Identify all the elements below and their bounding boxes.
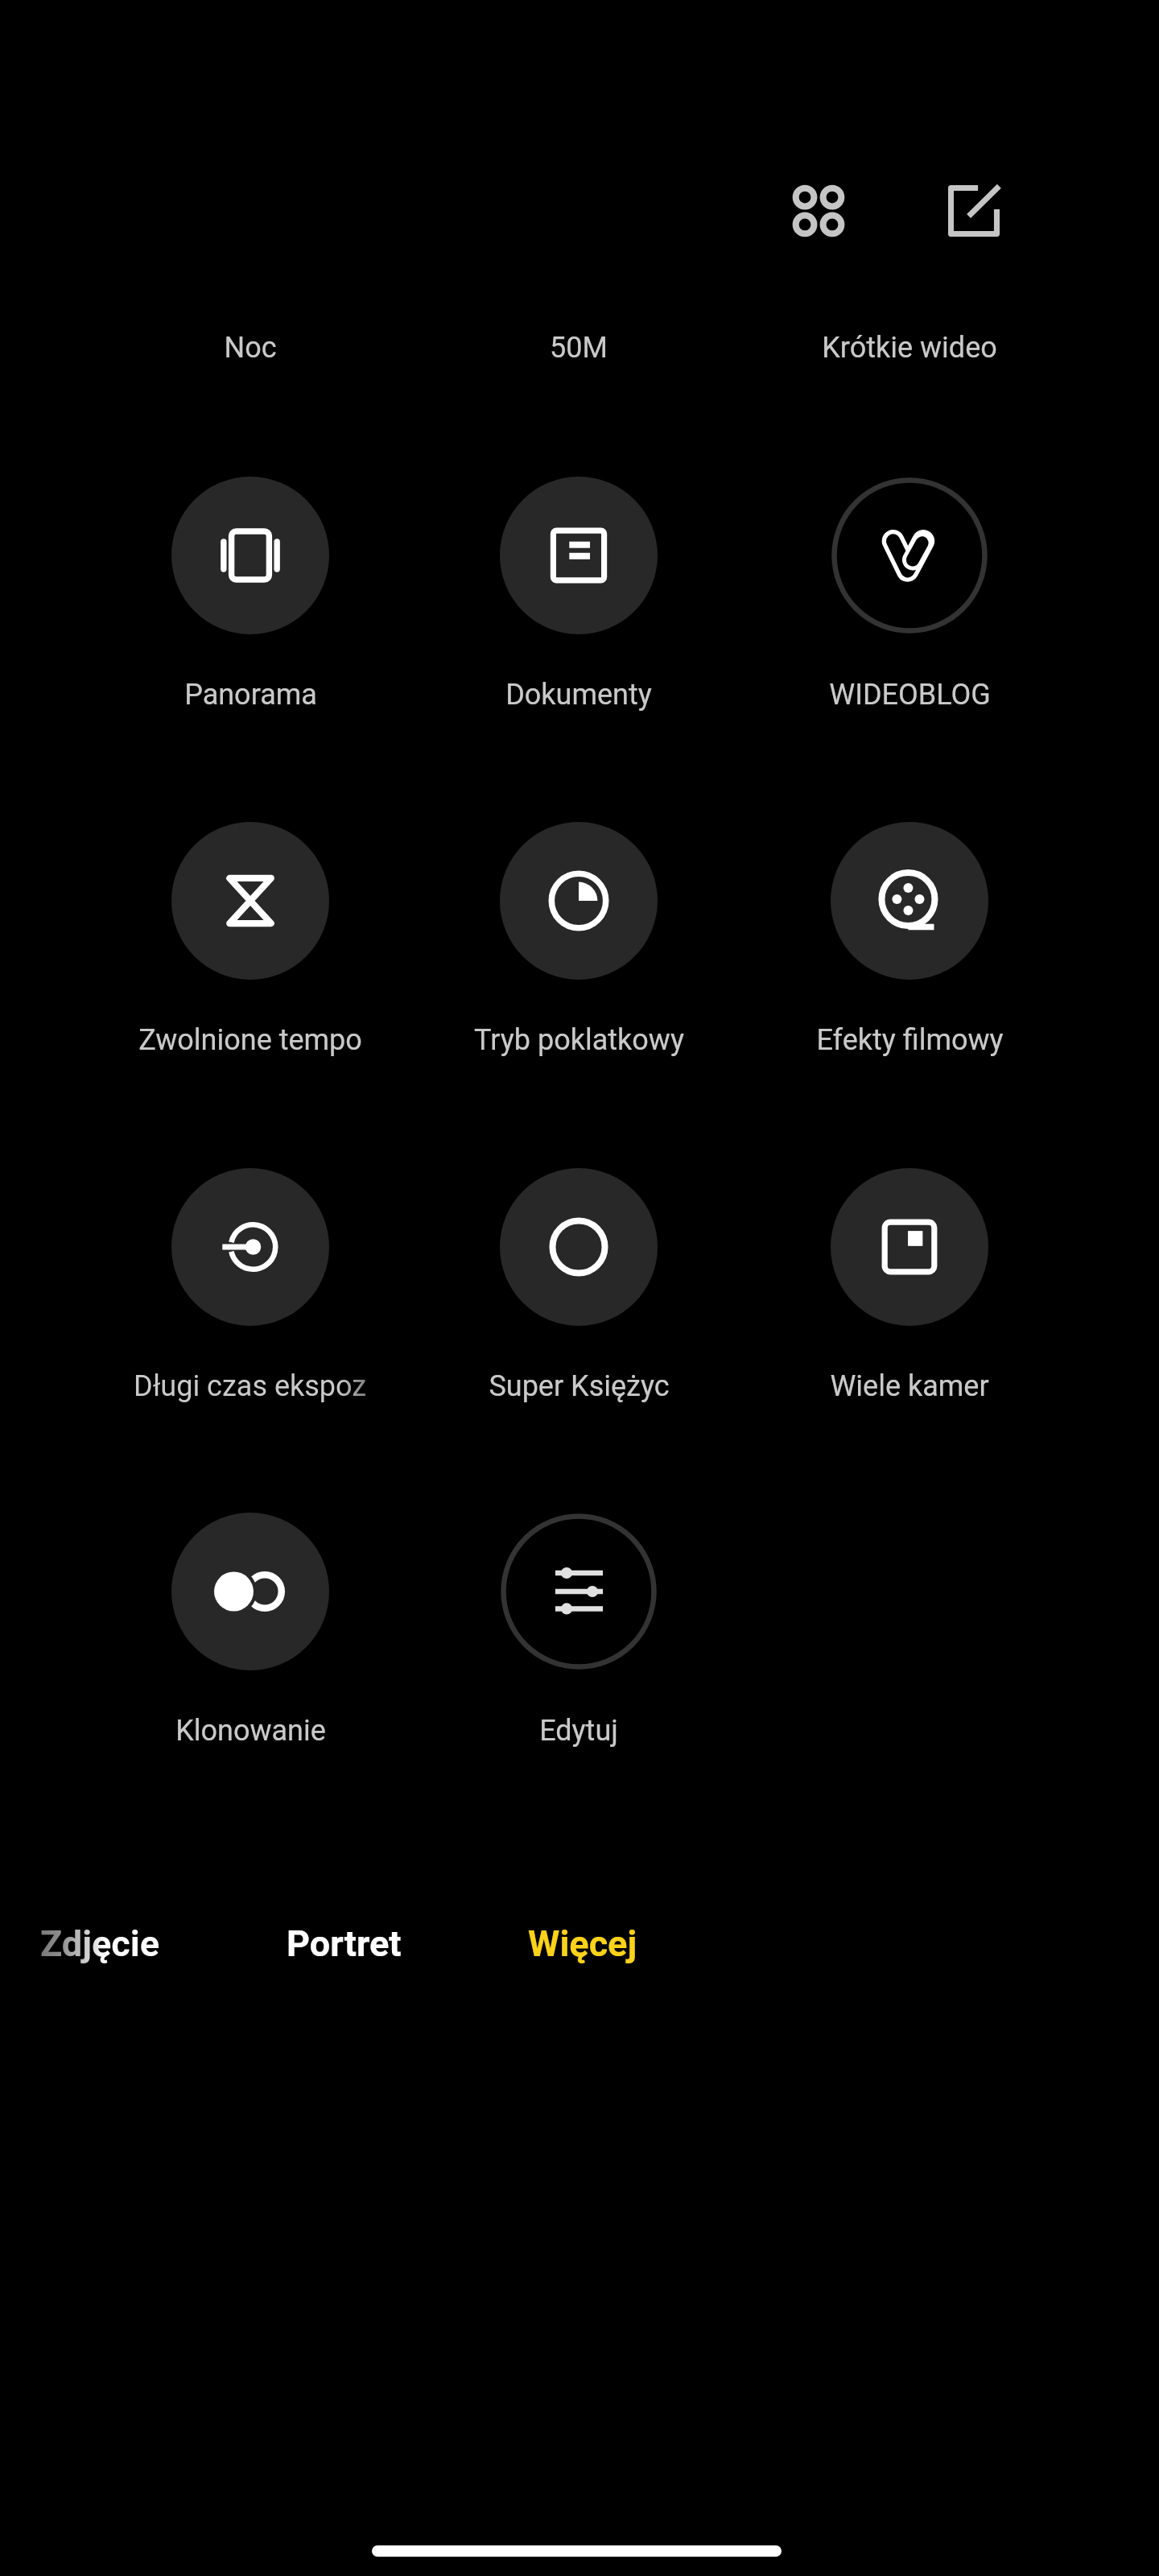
button[interactable]: Edit modes	[922, 159, 1026, 263]
button[interactable]: Wiele kamer	[749, 1168, 1070, 1414]
staticText: Portret	[287, 1922, 402, 1965]
staticText: Wiele kamer	[830, 1369, 989, 1403]
staticText: Tryb poklatkowy	[474, 1023, 684, 1057]
staticText: Zdjęcie	[40, 1922, 159, 1965]
button[interactable]: Zwolnione tempo	[89, 822, 411, 1068]
button[interactable]: Zdjęcie	[27, 1916, 172, 1971]
staticText: Długi czas ekspozycji	[134, 1369, 367, 1403]
staticText: Więcej	[528, 1922, 637, 1965]
button[interactable]: Super Księżyc	[418, 1168, 740, 1414]
staticText: WIDEOBLOG	[829, 678, 991, 712]
button[interactable]: Długi czas ekspozycji	[89, 1168, 411, 1414]
button[interactable]: Klonowanie	[89, 1513, 411, 1759]
button[interactable]: Więcej	[515, 1916, 650, 1971]
button[interactable]: Efekty filmowy	[749, 822, 1070, 1068]
staticText: Edytuj	[539, 1714, 618, 1748]
staticText: Krótkie wideo	[822, 331, 997, 365]
button[interactable]: Panorama	[89, 477, 411, 723]
button[interactable]: WIDEOBLOG	[749, 477, 1070, 723]
staticText: Efekty filmowy	[816, 1023, 1004, 1057]
staticText: 50M	[550, 331, 608, 365]
staticText: Dokumenty	[505, 678, 652, 712]
staticText: Zwolnione tempo	[138, 1023, 362, 1057]
staticText: Noc	[224, 331, 277, 365]
button[interactable]: Portret	[274, 1916, 415, 1971]
button[interactable]: Dokumenty	[418, 477, 740, 723]
staticText: Panorama	[184, 678, 317, 712]
button[interactable]: Edytuj	[418, 1513, 740, 1759]
button[interactable]: Modes grid	[766, 159, 871, 263]
staticText: Klonowanie	[175, 1714, 326, 1748]
button[interactable]: Tryb poklatkowy	[418, 822, 740, 1068]
staticText: Super Księżyc	[489, 1369, 670, 1403]
